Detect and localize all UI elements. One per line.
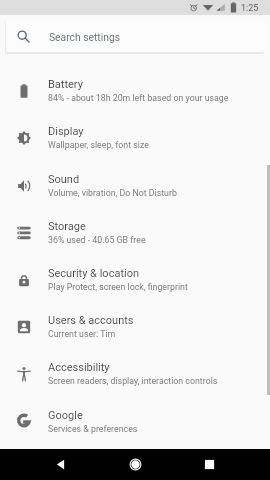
button[interactable]: Display <box>0 114 270 161</box>
staticText: 1:25 <box>241 3 259 14</box>
staticText: 84% - about 18h 20m left based on your u… <box>48 93 229 103</box>
staticText: Wallpaper, sleep, font size <box>48 140 149 150</box>
button[interactable]: Home <box>123 452 148 477</box>
button[interactable]: Security & location <box>0 256 270 303</box>
button[interactable]: Recent apps <box>197 452 222 477</box>
staticText: Play Protect, screen lock, fingerprint <box>48 282 188 292</box>
staticText: Volume, vibration, Do Not Disturb <box>48 188 177 198</box>
staticText: Current user: Tim <box>48 329 116 339</box>
button[interactable]: Search settings <box>6 21 265 52</box>
button[interactable]: Back <box>48 452 73 477</box>
staticText: Google <box>48 409 83 422</box>
staticText: Search settings <box>49 31 120 43</box>
staticText: Accessibility <box>48 361 110 374</box>
staticText: Services & preferences <box>48 424 138 434</box>
staticText: 36% used - 40.65 GB free <box>48 235 146 245</box>
staticText: Screen readers, display, interaction con… <box>48 376 218 386</box>
staticText: Battery <box>48 78 83 91</box>
button[interactable]: Users & accounts <box>0 303 270 350</box>
staticText: Display <box>48 125 84 138</box>
staticText: Users & accounts <box>48 314 134 327</box>
button[interactable]: Google <box>0 398 270 445</box>
button[interactable]: Battery <box>0 67 270 114</box>
button[interactable]: Accessibility <box>0 350 270 397</box>
button[interactable]: Sound <box>0 162 270 209</box>
staticText: Storage <box>48 220 86 233</box>
staticText: Sound <box>48 173 80 186</box>
staticText: Security & location <box>48 267 140 280</box>
button[interactable]: Storage <box>0 209 270 256</box>
